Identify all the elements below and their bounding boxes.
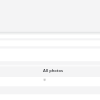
- staticText: All photos: [3, 68, 100, 73]
- button[interactable]: All photos: [0, 66, 100, 77]
